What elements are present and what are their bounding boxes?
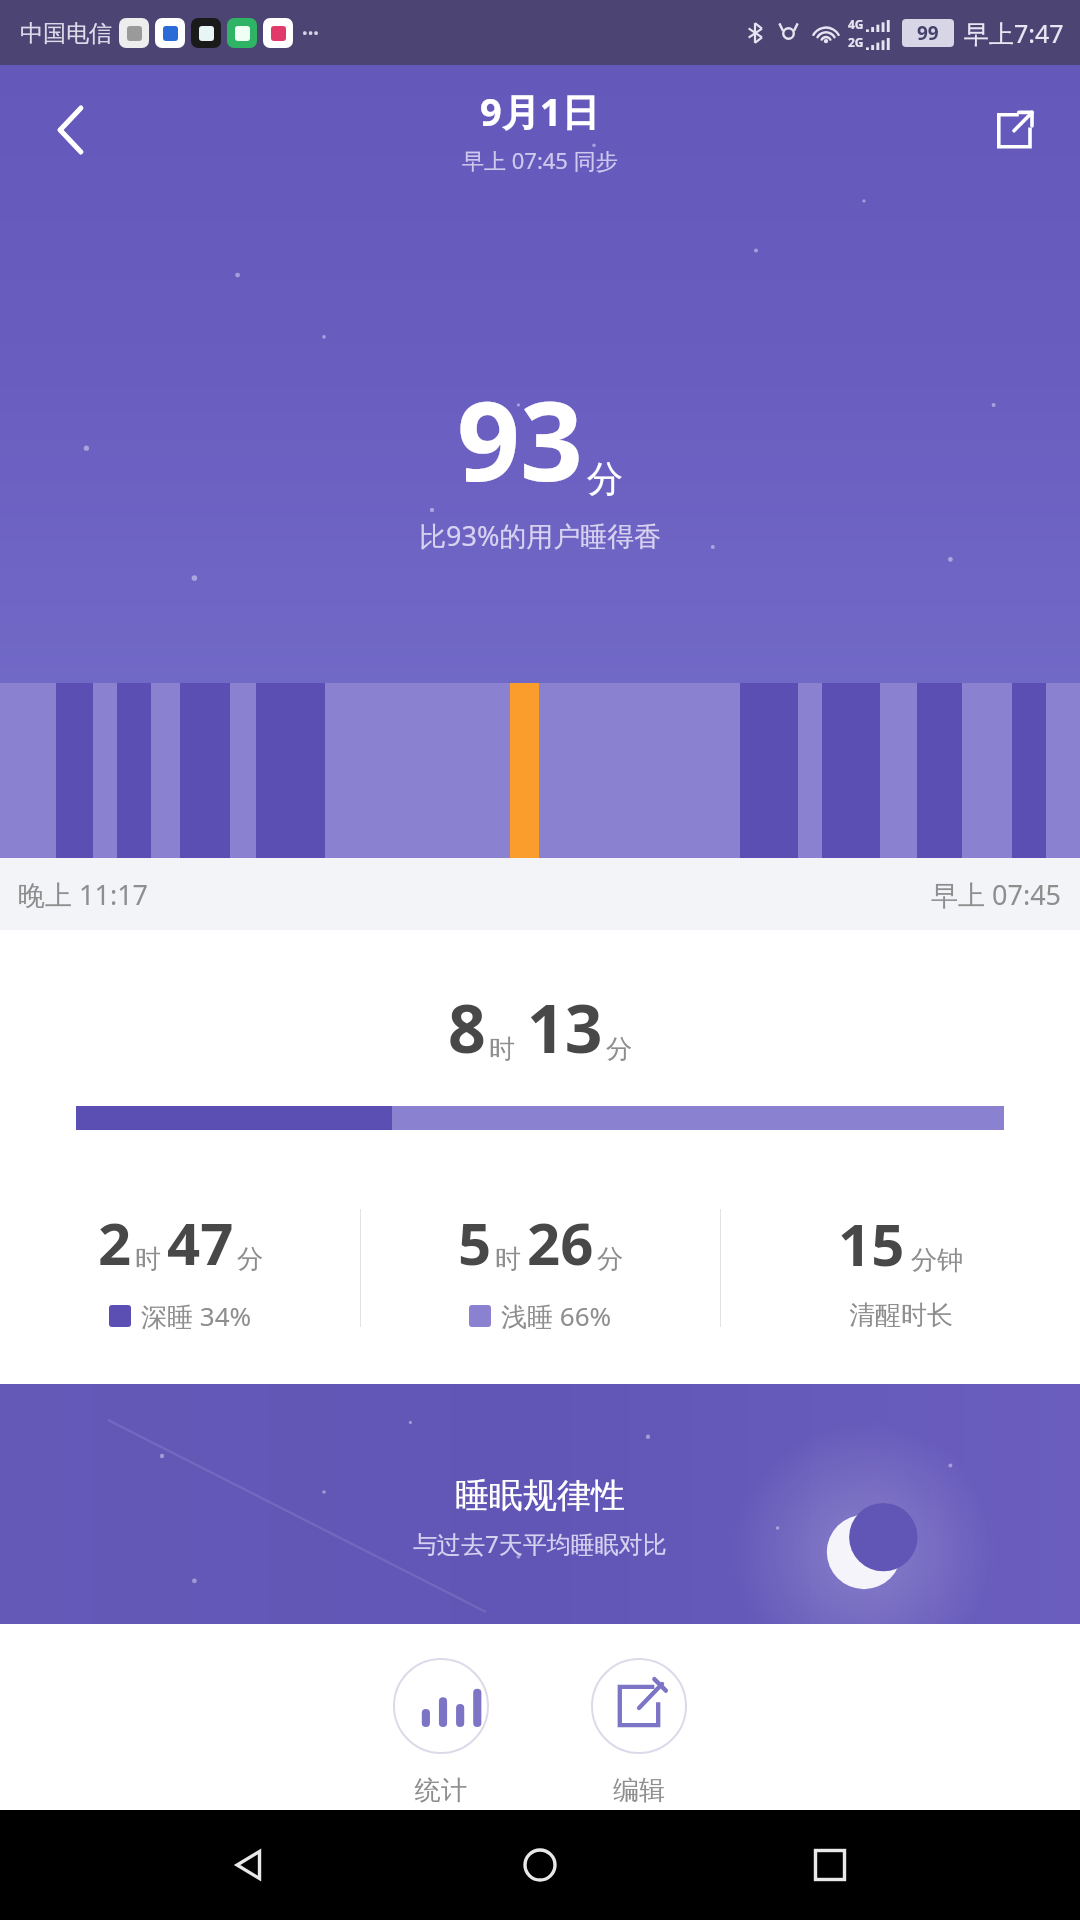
staticText: 时 bbox=[135, 1243, 161, 1276]
staticText: 统计 bbox=[415, 1774, 467, 1807]
button[interactable]: Back bbox=[30, 90, 110, 170]
staticText: 早上 07:45 同步 bbox=[462, 145, 618, 175]
staticText: 分 bbox=[237, 1243, 263, 1276]
staticText: 早上 07:45 bbox=[931, 876, 1062, 913]
staticText: 编辑 bbox=[613, 1774, 665, 1807]
staticText: 中国电信 bbox=[20, 19, 112, 48]
button[interactable]: 编辑 bbox=[583, 1658, 695, 1807]
staticText: 比93%的用户睡得香 bbox=[419, 517, 662, 554]
staticText: 26 bbox=[527, 1203, 594, 1282]
button[interactable]: 统计 bbox=[385, 1658, 497, 1807]
button[interactable]: Recents bbox=[790, 1825, 870, 1905]
staticText: 与过去7天平均睡眠对比 bbox=[413, 1527, 667, 1560]
staticText: 浅睡 66% bbox=[501, 1298, 612, 1334]
staticText: 分 bbox=[597, 1243, 623, 1276]
button[interactable]: 睡眠规律性 bbox=[0, 1384, 1080, 1624]
staticText: 9月1日 bbox=[480, 85, 600, 137]
staticText: 睡眠规律性 bbox=[455, 1474, 625, 1517]
staticText: 时 bbox=[495, 1243, 521, 1276]
staticText: 早上7:47 bbox=[964, 16, 1064, 50]
staticText: 99 bbox=[917, 20, 939, 46]
button[interactable]: Back bbox=[210, 1825, 290, 1905]
staticText: 8 bbox=[448, 982, 486, 1072]
staticText: 2 bbox=[98, 1203, 132, 1282]
staticText: 深睡 34% bbox=[141, 1298, 252, 1334]
staticText: 晚上 11:17 bbox=[18, 876, 149, 913]
staticText: 时 bbox=[489, 1033, 515, 1066]
staticText: 4G bbox=[848, 16, 864, 32]
staticText: 分 bbox=[606, 1033, 632, 1066]
staticText: 2G bbox=[848, 34, 864, 50]
staticText: 93 bbox=[457, 363, 583, 513]
staticText: 15 bbox=[838, 1204, 905, 1283]
staticText: 13 bbox=[527, 982, 603, 1072]
staticText: ••• bbox=[302, 23, 319, 43]
staticText: 分 bbox=[587, 456, 623, 501]
button[interactable]: Home bbox=[500, 1825, 580, 1905]
staticText: 清醒时长 bbox=[849, 1299, 953, 1332]
button[interactable]: Share bbox=[974, 90, 1054, 170]
staticText: 47 bbox=[167, 1203, 234, 1282]
staticText: 分钟 bbox=[911, 1244, 963, 1277]
staticText: 5 bbox=[458, 1203, 492, 1282]
